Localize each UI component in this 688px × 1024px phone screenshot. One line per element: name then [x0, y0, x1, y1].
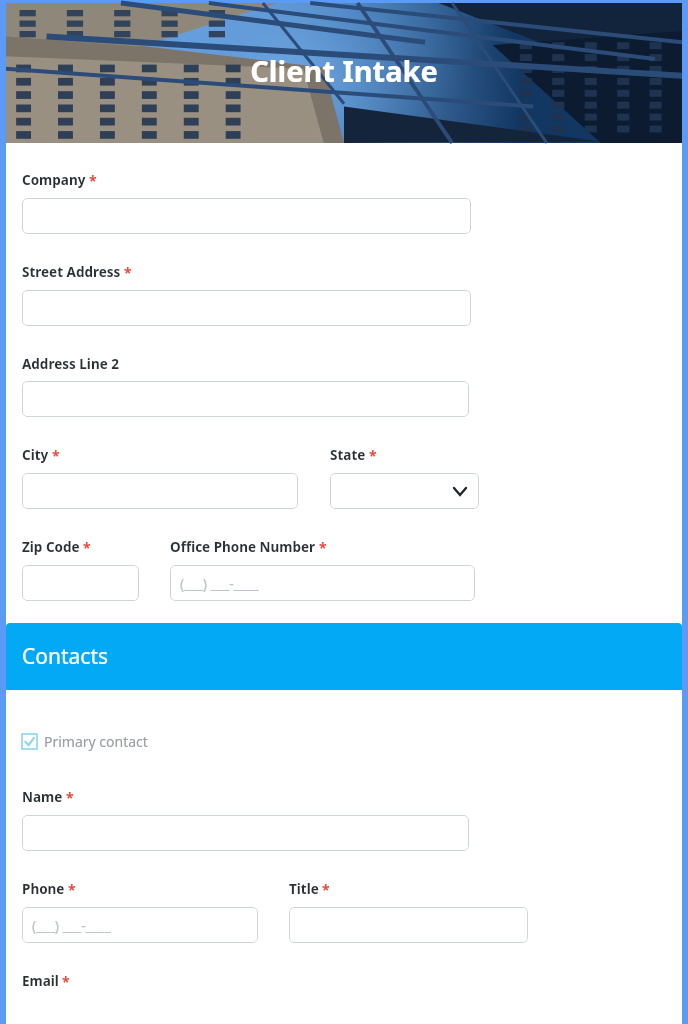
staticText: Client Intake — [6, 51, 682, 90]
staticText: * — [322, 880, 330, 899]
staticText: Primary contact — [44, 732, 148, 751]
button[interactable]: Company — [22, 198, 471, 234]
staticText: City — [22, 446, 49, 464]
staticText: Email — [22, 972, 59, 990]
button[interactable]: Office Phone Number — [170, 565, 475, 601]
button[interactable]: Street Address — [22, 290, 471, 326]
staticText: Street Address — [22, 263, 121, 281]
button[interactable]: Primary contact — [22, 730, 148, 753]
staticText: * — [89, 171, 97, 190]
button[interactable]: Address Line 2 — [22, 381, 469, 417]
button[interactable]: Phone — [22, 907, 258, 943]
staticText: * — [68, 880, 76, 899]
staticText: Zip Code — [22, 538, 80, 556]
button[interactable]: Zip Code — [22, 565, 139, 601]
staticText: Company — [22, 171, 86, 189]
button[interactable]: Title — [289, 907, 528, 943]
staticText: * — [66, 788, 74, 807]
staticText: State — [330, 446, 366, 464]
staticText: Address Line 2 — [22, 355, 119, 373]
staticText: Office Phone Number — [170, 538, 316, 556]
button[interactable]: State — [330, 473, 479, 509]
staticText: * — [319, 538, 327, 557]
staticText: Name — [22, 788, 63, 806]
button[interactable]: City — [22, 473, 298, 509]
staticText: (___) ___-____ — [180, 574, 259, 593]
staticText: * — [52, 446, 60, 465]
staticText: * — [369, 446, 377, 465]
staticText: Contacts — [22, 642, 109, 671]
staticText: Phone — [22, 880, 65, 898]
staticText: * — [83, 538, 91, 557]
staticText: * — [62, 972, 70, 991]
staticText: (___) ___-____ — [32, 916, 111, 935]
button[interactable]: Name — [22, 815, 469, 851]
staticText: * — [124, 263, 132, 282]
staticText: Title — [289, 880, 319, 898]
